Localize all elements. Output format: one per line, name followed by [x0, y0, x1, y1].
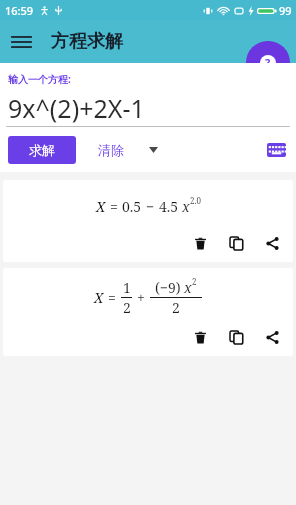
staticText: =: [108, 288, 116, 307]
button[interactable]: 求解: [8, 136, 76, 164]
button[interactable]: 清除: [98, 136, 124, 164]
button[interactable]: Share: [261, 232, 283, 254]
button[interactable]: X: [3, 268, 293, 356]
staticText: (−9): [155, 278, 181, 297]
staticText: 1: [123, 278, 131, 297]
button[interactable]: Delete: [189, 326, 211, 348]
staticText: 输入一个方程:: [8, 72, 71, 86]
staticText: 2.0: [190, 195, 201, 206]
staticText: 清除: [98, 142, 124, 158]
staticText: 2: [172, 298, 180, 317]
staticText: 2: [192, 276, 197, 287]
staticText: 求解: [29, 142, 55, 158]
button[interactable]: Help: [246, 41, 290, 84]
staticText: 99: [279, 3, 292, 18]
staticText: 4.5: [159, 197, 179, 216]
staticText: 16:59: [5, 3, 34, 18]
button[interactable]: X: [3, 180, 293, 262]
staticText: =: [110, 197, 118, 216]
button[interactable]: Delete: [189, 232, 211, 254]
button[interactable]: Navigation menu: [0, 20, 43, 63]
button[interactable]: Keyboard: [264, 138, 288, 162]
staticText: +: [137, 288, 145, 307]
button[interactable]: 9x^(2)+2X-1: [0, 90, 296, 126]
staticText: 2: [123, 298, 131, 317]
staticText: 方程求解: [51, 30, 123, 53]
button[interactable]: Copy: [225, 326, 247, 348]
staticText: −: [146, 197, 155, 216]
button[interactable]: Share: [261, 326, 283, 348]
staticText: 9x^(2)+2X-1: [8, 91, 145, 125]
staticText: X: [96, 197, 106, 216]
staticText: ?: [265, 55, 271, 70]
button[interactable]: Copy: [225, 232, 247, 254]
staticText: X: [94, 288, 104, 307]
staticText: 0.5: [122, 197, 142, 216]
staticText: x: [184, 278, 192, 297]
staticText: x: [182, 197, 190, 216]
button[interactable]: More options: [142, 139, 164, 161]
